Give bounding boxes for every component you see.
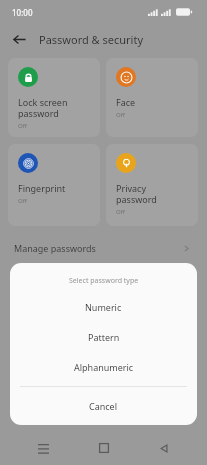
staticText: Cancel <box>89 400 118 412</box>
staticText: Manage passwords <box>14 242 96 254</box>
button[interactable]: Back <box>7 27 31 51</box>
button[interactable]: Pattern <box>10 327 197 346</box>
staticText: Privacy password <box>116 182 157 205</box>
staticText: Fingerprint <box>18 182 66 194</box>
staticText: Alphanumeric <box>74 361 134 373</box>
button[interactable]: Alphanumeric <box>10 357 197 376</box>
staticText: 10:00 <box>12 7 33 18</box>
button[interactable]: Back <box>147 431 181 465</box>
staticText: Lock screen password <box>18 96 68 119</box>
button[interactable]: Lock screen password <box>8 58 100 137</box>
staticText: Off <box>18 122 27 130</box>
button[interactable]: Fingerprint <box>8 144 100 226</box>
button[interactable]: Manage passwords <box>8 234 199 262</box>
staticText: Pattern <box>88 331 120 343</box>
staticText: Off <box>116 111 125 119</box>
staticText: Select password type <box>69 276 139 286</box>
button[interactable]: Recents <box>26 431 60 465</box>
button[interactable]: Face <box>106 58 198 137</box>
staticText: Numeric <box>85 301 122 313</box>
button[interactable]: Home <box>87 431 121 465</box>
staticText: Off <box>116 208 125 216</box>
button[interactable]: Cancel <box>10 396 197 415</box>
staticText: Face <box>116 96 136 108</box>
button[interactable]: Privacy password <box>106 144 198 226</box>
staticText: Password & security <box>39 32 144 47</box>
staticText: Off <box>18 197 27 205</box>
button[interactable]: Numeric <box>10 297 197 316</box>
